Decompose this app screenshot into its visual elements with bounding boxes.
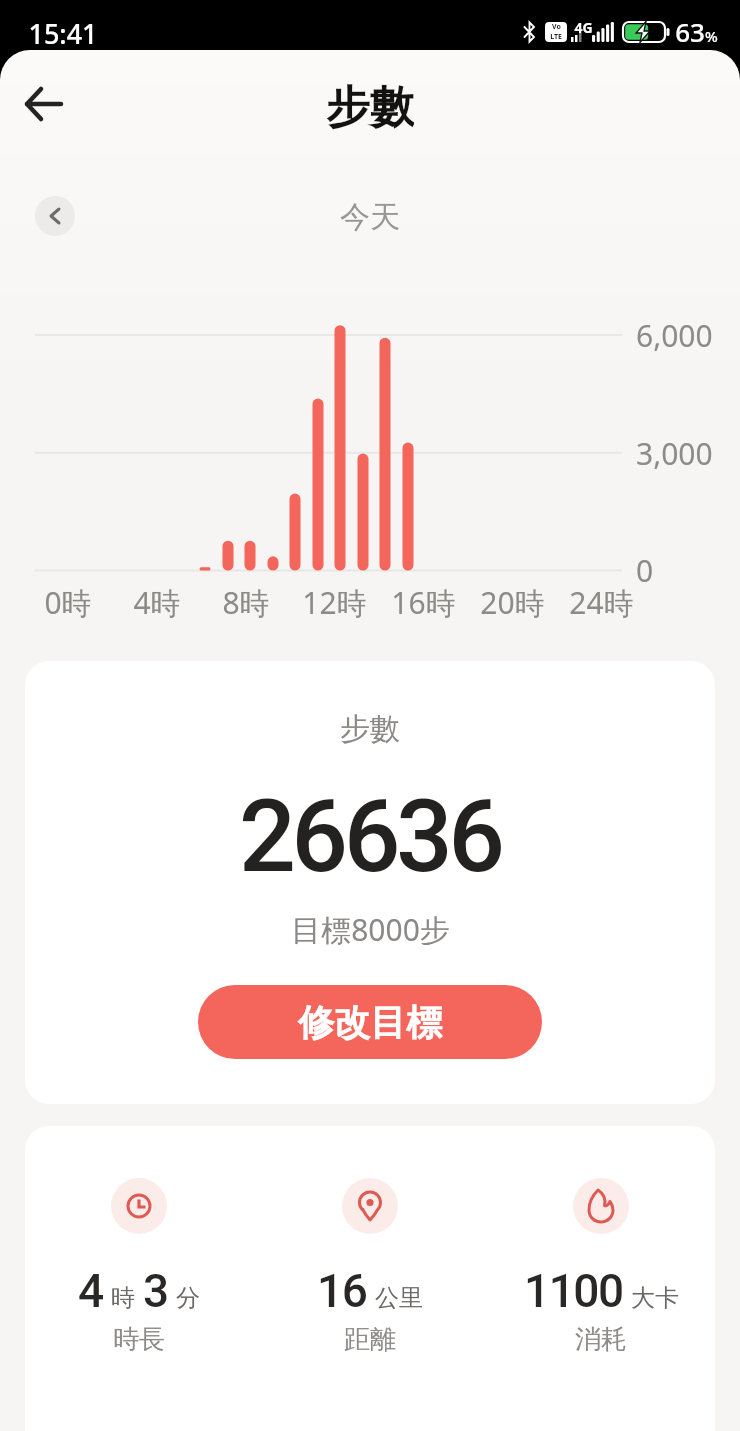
button[interactable] xyxy=(16,76,72,132)
staticText: 公里 xyxy=(375,1283,423,1313)
staticText: 15:41 xyxy=(28,15,98,52)
staticText: 20時 xyxy=(480,582,545,622)
staticText: 今天 xyxy=(340,198,400,234)
staticText: 時 xyxy=(111,1283,135,1313)
button[interactable]: 修改目標 xyxy=(198,985,542,1059)
staticText: Vo xyxy=(552,22,561,32)
staticText: % xyxy=(705,26,718,46)
staticText: 消耗 xyxy=(575,1323,627,1356)
staticText: 63 xyxy=(675,14,705,49)
staticText: 3 xyxy=(143,1264,168,1318)
staticText: 4 xyxy=(78,1264,103,1318)
staticText: 大卡 xyxy=(631,1283,679,1313)
staticText: 0時 xyxy=(44,582,92,622)
staticText: 步數 xyxy=(340,710,400,746)
staticText: 16 xyxy=(317,1264,367,1318)
staticText: 3,000 xyxy=(636,433,713,473)
staticText: 24時 xyxy=(569,582,634,622)
staticText: 4G xyxy=(574,18,593,37)
staticText: 分 xyxy=(176,1283,200,1313)
staticText: 步數 xyxy=(326,80,414,130)
staticText: 16時 xyxy=(391,582,456,622)
staticText: 8時 xyxy=(222,582,270,622)
staticText: 0 xyxy=(636,550,654,590)
staticText: LTE xyxy=(550,32,562,42)
staticText: 12時 xyxy=(302,582,367,622)
button[interactable] xyxy=(35,196,75,236)
staticText: 時長 xyxy=(113,1323,165,1356)
staticText: 4時 xyxy=(133,582,181,622)
staticText: 1100 xyxy=(524,1264,623,1318)
staticText: 修改目標 xyxy=(298,1000,442,1045)
staticText: 距離 xyxy=(344,1323,396,1356)
staticText: 6,000 xyxy=(636,315,713,355)
staticText: 26636 xyxy=(239,778,501,894)
staticText: 目標8000步 xyxy=(291,909,450,945)
